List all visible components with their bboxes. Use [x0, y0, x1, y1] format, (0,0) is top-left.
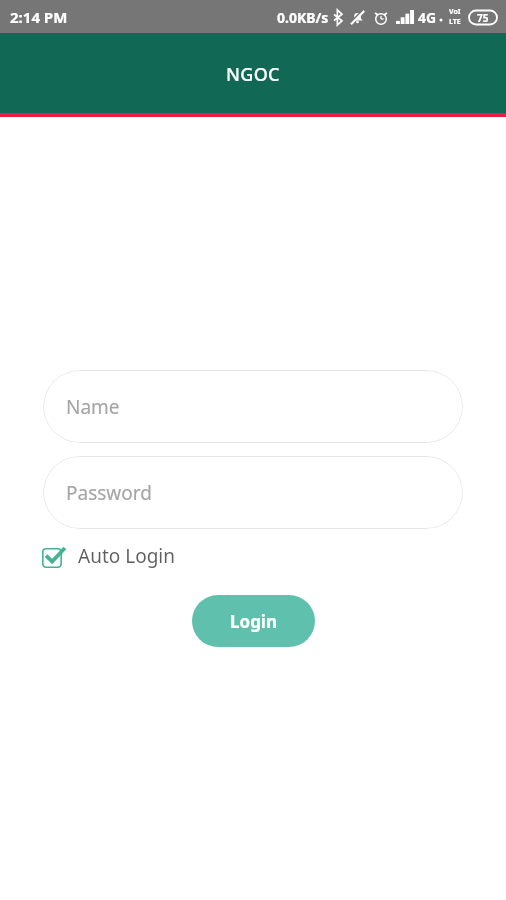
staticText: VoI	[449, 7, 461, 17]
button[interactable]: Password	[43, 456, 463, 529]
staticText: 4G	[418, 8, 437, 27]
staticText: Password	[66, 480, 152, 506]
staticText: 2:14 PM	[10, 7, 68, 27]
other: Auto Login checkbox	[42, 544, 65, 568]
staticText: LTE	[449, 17, 461, 27]
staticText: 75	[477, 11, 489, 25]
button[interactable]: Auto Login checkbox	[36, 537, 185, 575]
staticText: Auto Login	[78, 543, 175, 569]
button[interactable]: Login	[192, 595, 315, 647]
staticText: NGOC	[226, 62, 280, 87]
button[interactable]: Name	[43, 370, 463, 443]
staticText: Login	[230, 610, 278, 633]
staticText: Name	[66, 394, 120, 420]
staticText: 0.0KB/s	[277, 8, 329, 27]
